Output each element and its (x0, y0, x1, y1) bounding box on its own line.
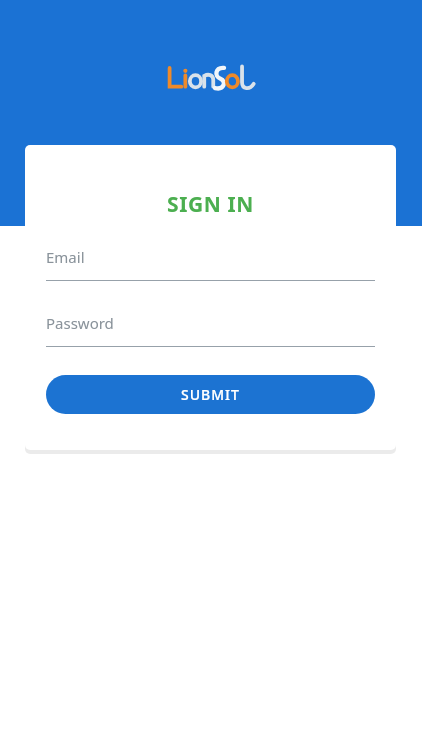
staticText: SUBMIT (181, 385, 240, 404)
staticText: Password (46, 313, 114, 333)
button[interactable]: Email (46, 247, 375, 281)
button[interactable]: SUBMIT (46, 375, 375, 414)
staticText: Email (46, 247, 85, 267)
staticText: SIGN IN (25, 190, 396, 219)
button[interactable]: Password (46, 313, 375, 347)
